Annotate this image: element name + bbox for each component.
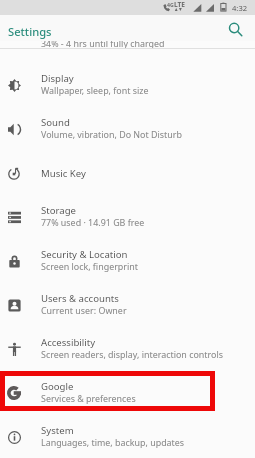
button[interactable]: Users & accounts (0, 283, 255, 327)
button[interactable]: Google (0, 371, 255, 415)
button[interactable]: Search (222, 16, 248, 42)
staticText: Services & preferences (41, 392, 136, 404)
staticText: Accessibility (41, 336, 96, 349)
button[interactable]: System (0, 415, 255, 458)
staticText: System (41, 424, 74, 437)
staticText: 4G (167, 1, 174, 8)
staticText: 77% used · 14.91 GB free (41, 216, 145, 228)
staticText: Volume, vibration, Do Not Disturb (41, 128, 182, 140)
button[interactable]: Display (0, 63, 255, 107)
button[interactable]: Storage (0, 195, 255, 239)
button[interactable]: Security & Location (0, 239, 255, 283)
staticText: Music Key (41, 167, 86, 180)
staticText: Sound (41, 116, 70, 129)
staticText: Current user: Owner (41, 304, 127, 316)
staticText: Security & Location (41, 248, 128, 261)
staticText: Display (41, 72, 74, 85)
staticText: Wallpaper, sleep, font size (41, 84, 149, 96)
staticText: Google (41, 380, 74, 393)
button[interactable]: Accessibility (0, 327, 255, 371)
staticText: 4:32 (232, 3, 248, 13)
staticText: 34% - 4 hrs until fully charged (41, 37, 165, 49)
staticText: Users & accounts (41, 292, 119, 305)
staticText: Storage (41, 204, 76, 217)
staticText: Screen lock, fingerprint (41, 260, 138, 272)
staticText: Screen readers, display, interaction con… (41, 348, 223, 360)
button[interactable]: Music Key (0, 151, 255, 195)
button[interactable]: Sound (0, 107, 255, 151)
staticText: Settings (8, 24, 52, 39)
staticText: LTE (174, 0, 186, 9)
staticText: Languages, time, backup, updates (41, 436, 185, 448)
